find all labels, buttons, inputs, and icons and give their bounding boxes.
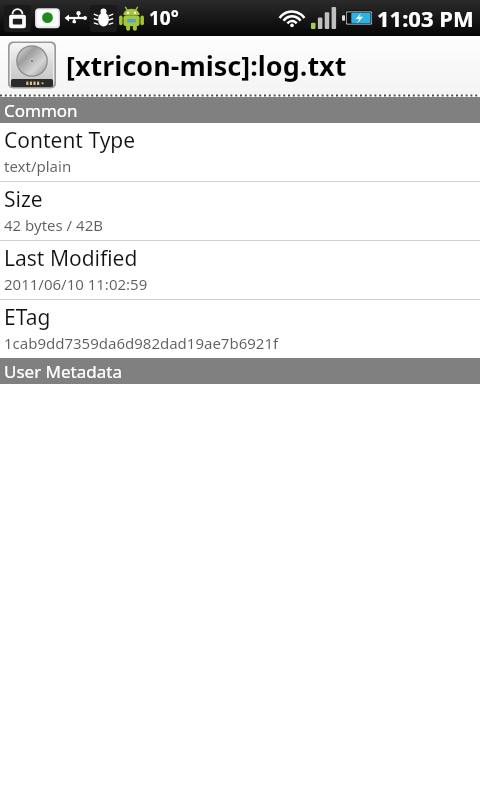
staticText: 10° [149, 5, 179, 31]
staticText: 42 bytes / 42B [4, 215, 103, 235]
staticText: [xtricon-misc]:log.txt [66, 47, 347, 84]
button[interactable]: Content Type [0, 123, 480, 182]
staticText: 2011/06/10 11:02:59 [4, 274, 148, 294]
button[interactable]: [xtricon-misc]:log.txt [0, 36, 480, 94]
staticText: text/plain [4, 156, 72, 176]
button[interactable]: Size [0, 182, 480, 241]
button[interactable]: ETag [0, 300, 480, 358]
staticText: Size [4, 185, 43, 214]
staticText: Common [4, 99, 78, 122]
staticText: User Metadata [4, 360, 122, 383]
staticText: Content Type [4, 126, 136, 155]
staticText: ETag [4, 303, 51, 332]
staticText: 11:03 PM [377, 3, 474, 33]
staticText: 1cab9dd7359da6d982dad19ae7b6921f [4, 333, 279, 353]
staticText: Last Modified [4, 244, 138, 273]
button[interactable]: Last Modified [0, 241, 480, 300]
